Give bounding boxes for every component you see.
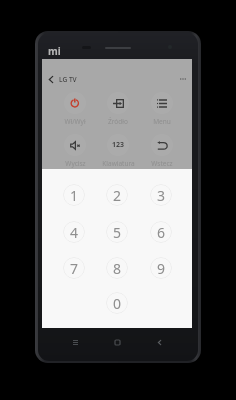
button[interactable]: 3 [150,184,172,206]
staticText: 1 [70,186,79,205]
staticText: Wycisz [65,159,86,168]
staticText: Wł/Wył [64,117,86,126]
button[interactable]: 0 [106,292,128,314]
button[interactable]: 123 [97,132,139,168]
staticText: Klawiatura [102,159,135,168]
button[interactable]: Back [151,334,167,350]
staticText: Wstecz [151,159,173,168]
button[interactable]: Wycisz [54,132,96,168]
staticText: 4 [70,223,79,242]
staticText: 9 [157,259,166,278]
staticText: 2 [113,186,122,205]
button[interactable]: Navigate up [42,70,192,88]
staticText: 8 [113,259,122,278]
staticText: 0 [113,294,122,313]
staticText: 3 [157,186,166,205]
button[interactable]: Źródło [97,90,139,126]
staticText: 7 [70,259,79,278]
staticText: Źródło [108,117,128,126]
staticText: LG TV [59,75,77,84]
button[interactable]: More options [176,72,190,86]
button[interactable]: 2 [106,184,128,206]
button[interactable]: Menu [141,90,183,126]
button[interactable]: Navigate up [45,73,57,85]
button[interactable]: Recents [67,334,83,350]
staticText: Menu [153,117,171,126]
button[interactable]: 1 [63,184,85,206]
staticText: 123 [112,140,125,150]
staticText: 6 [157,223,166,242]
button[interactable]: 9 [150,257,172,279]
button[interactable]: 8 [106,257,128,279]
button[interactable]: Home [109,334,125,350]
button[interactable]: 4 [63,221,85,243]
staticText: 5 [113,223,122,242]
button[interactable]: 7 [63,257,85,279]
button[interactable]: 5 [106,221,128,243]
button[interactable]: 6 [150,221,172,243]
button[interactable]: Wł/Wył [54,90,96,126]
staticText: mi [48,44,61,58]
button[interactable]: Wstecz [141,132,183,168]
